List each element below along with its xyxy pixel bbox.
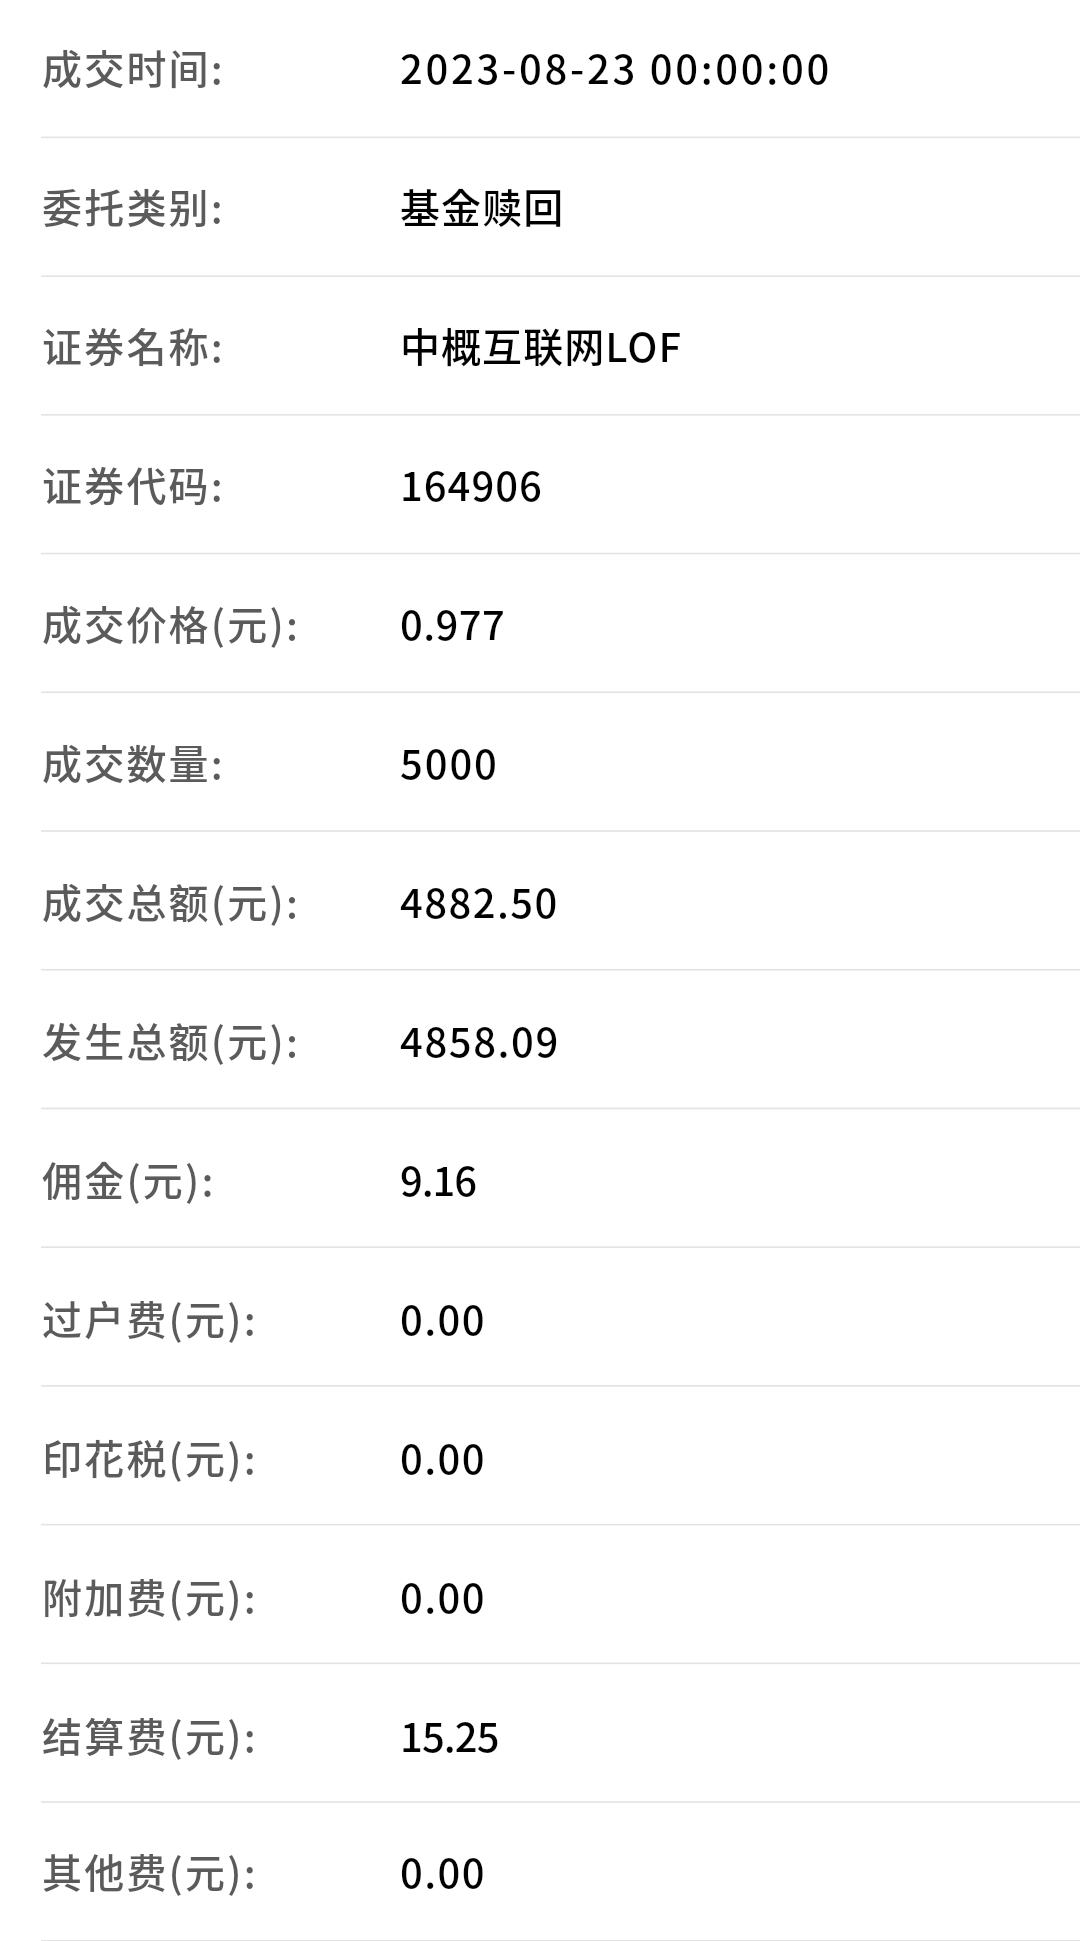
staticText: 发生总额(元): [42, 1011, 300, 1069]
button[interactable]: 成交价格(元): [0, 556, 1080, 695]
button[interactable]: 成交数量: [0, 695, 1080, 834]
button[interactable]: 其他费(元): [0, 1807, 1080, 1941]
staticText: 0.00 [400, 1567, 487, 1625]
staticText: 15.25 [400, 1706, 499, 1764]
button[interactable]: 发生总额(元): [0, 973, 1080, 1112]
button[interactable]: 成交总额(元): [0, 834, 1080, 973]
staticText: 佣金(元): [42, 1150, 216, 1208]
staticText: 5000 [400, 733, 499, 791]
button[interactable]: 附加费(元): [0, 1529, 1080, 1668]
staticText: 成交数量: [42, 733, 225, 791]
staticText: 成交价格(元): [42, 594, 300, 652]
staticText: 其他费(元): [42, 1842, 258, 1900]
staticText: 中概互联网LOF [400, 316, 683, 374]
staticText: 成交总额(元): [42, 872, 300, 930]
staticText: 证券代码: [42, 455, 225, 513]
staticText: 结算费(元): [42, 1706, 258, 1764]
staticText: 4882.50 [400, 872, 559, 930]
staticText: 2023-08-23 00:00:00 [400, 38, 832, 96]
staticText: 证券名称: [42, 316, 225, 374]
staticText: 过户费(元): [42, 1289, 258, 1347]
button[interactable]: 委托类别: [0, 139, 1080, 278]
button[interactable]: 证券名称: [0, 278, 1080, 417]
staticText: 基金赎回 [400, 177, 565, 235]
button[interactable]: 印花税(元): [0, 1390, 1080, 1529]
button[interactable]: 过户费(元): [0, 1251, 1080, 1390]
staticText: 0.977 [400, 594, 506, 652]
button[interactable]: 证券代码: [0, 417, 1080, 556]
staticText: 0.00 [400, 1289, 487, 1347]
staticText: 附加费(元): [42, 1567, 258, 1625]
staticText: 0.00 [400, 1842, 487, 1900]
staticText: 9.16 [400, 1150, 476, 1208]
button[interactable]: 佣金(元): [0, 1112, 1080, 1251]
staticText: 印花税(元): [42, 1428, 258, 1486]
button[interactable]: 结算费(元): [0, 1668, 1080, 1807]
staticText: 0.00 [400, 1428, 487, 1486]
staticText: 4858.09 [400, 1011, 560, 1069]
other: 成交明细 [0, 0, 1080, 1941]
button[interactable]: 成交时间: [0, 0, 1080, 139]
staticText: 164906 [400, 455, 543, 513]
staticText: 成交时间: [42, 38, 225, 96]
staticText: 委托类别: [42, 177, 225, 235]
